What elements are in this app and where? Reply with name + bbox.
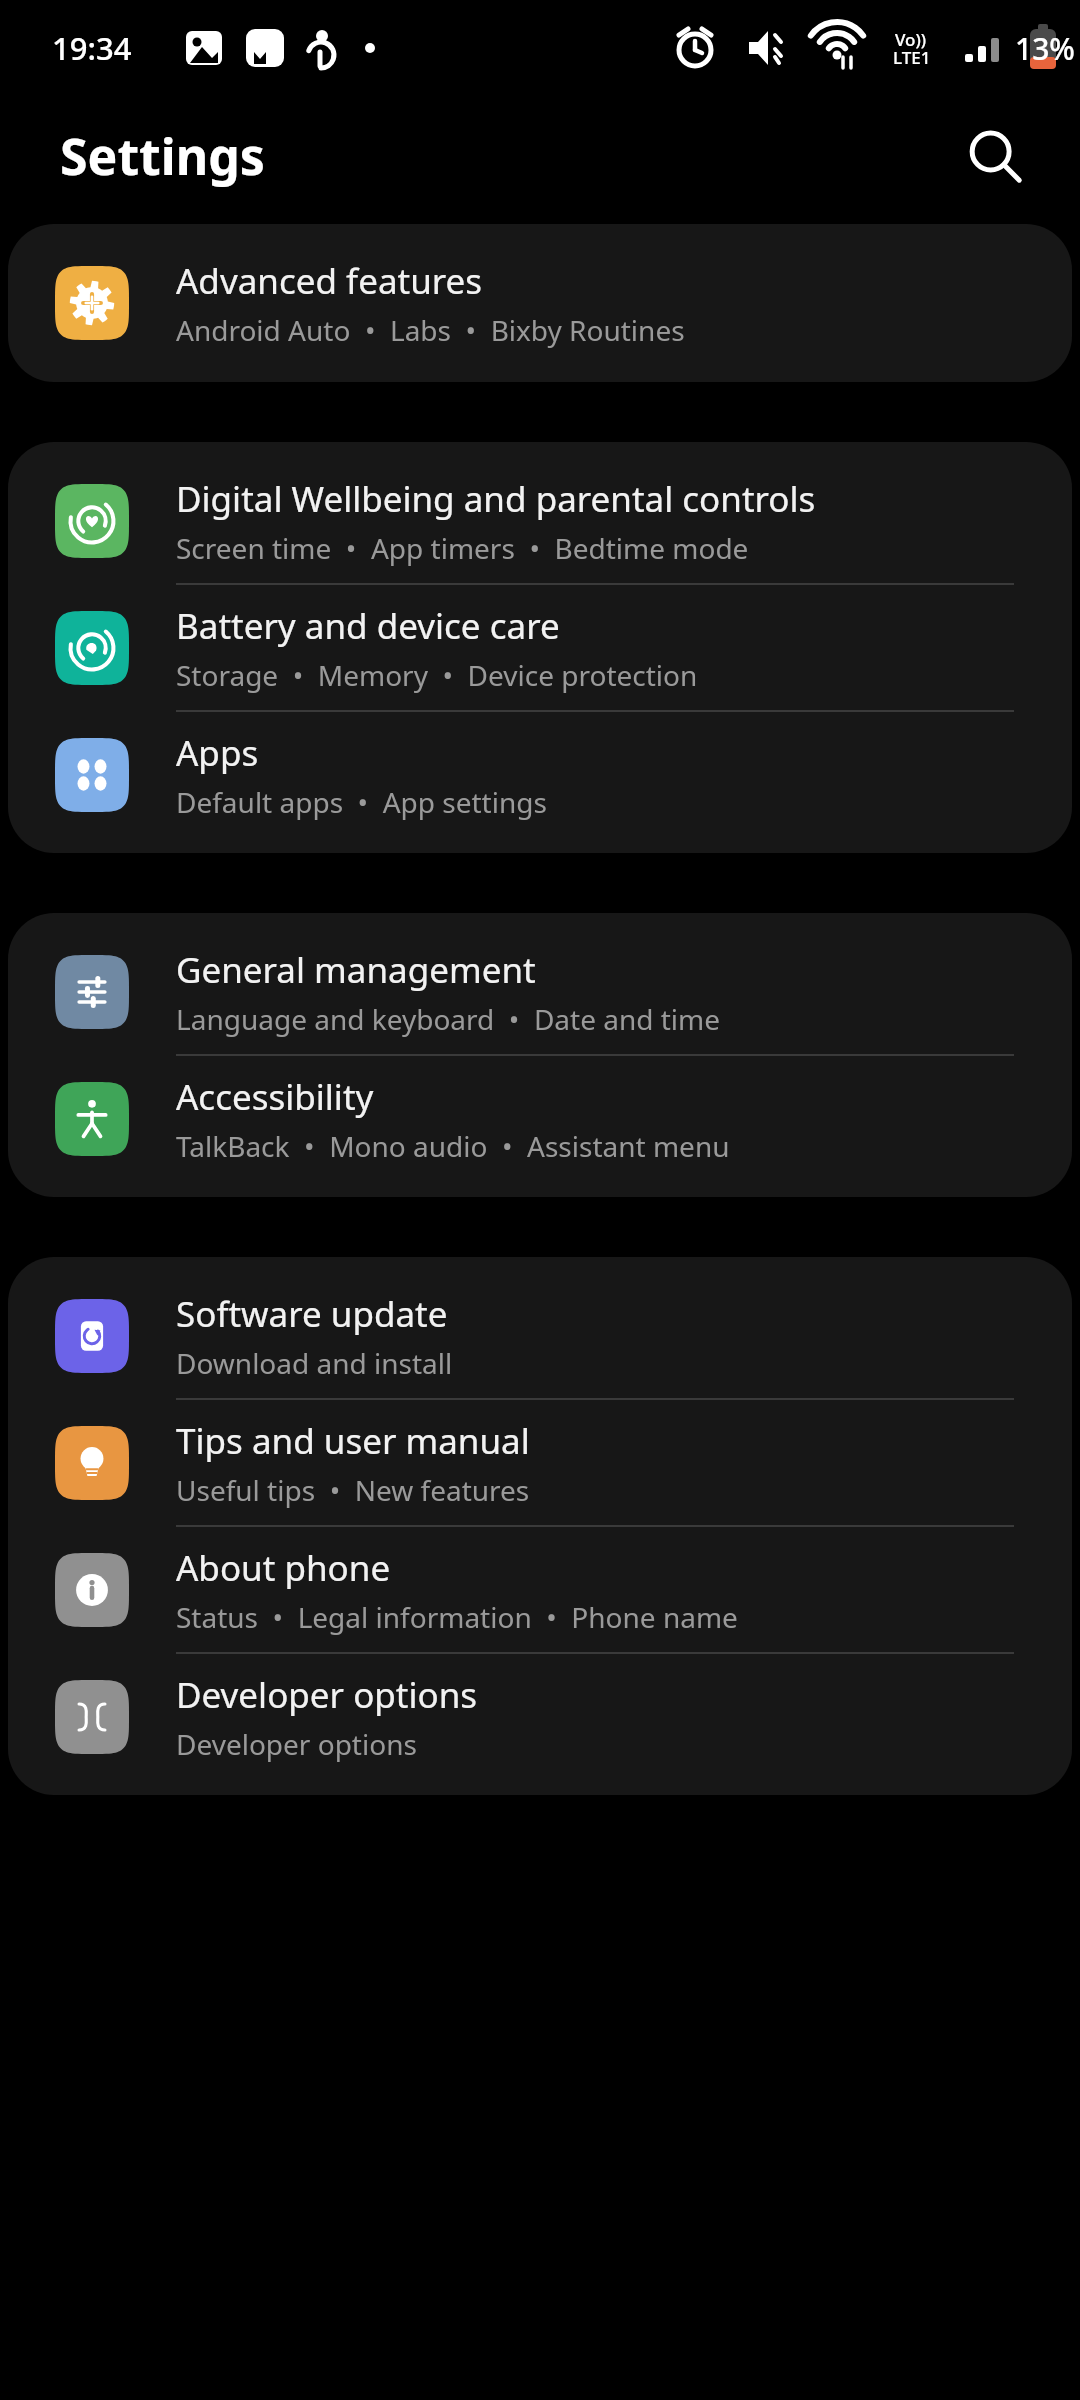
staticText: General management	[176, 946, 536, 994]
button[interactable]: Digital Wellbeing and parental controls	[8, 458, 1072, 583]
staticText: 13%	[1015, 28, 1075, 69]
staticText: Settings	[60, 122, 265, 190]
staticText: Tips and user manual	[176, 1417, 530, 1465]
staticText: Android Auto • Labs • Bixby Routines	[176, 311, 685, 349]
staticText: Software update	[176, 1290, 448, 1338]
staticText: LTE1	[893, 46, 931, 69]
button[interactable]: Software update	[8, 1273, 1072, 1398]
staticText: Advanced features	[176, 257, 483, 305]
button[interactable]: Developer options	[8, 1654, 1072, 1779]
staticText: Download and install	[176, 1344, 453, 1382]
button[interactable]: Accessibility	[8, 1056, 1072, 1181]
button[interactable]: General management	[8, 929, 1072, 1054]
button[interactable]: Battery and device care	[8, 585, 1072, 710]
button[interactable]: About phone	[8, 1527, 1072, 1652]
button[interactable]: Advanced features	[8, 240, 1072, 366]
staticText: Accessibility	[176, 1073, 374, 1121]
staticText: Digital Wellbeing and parental controls	[176, 475, 816, 523]
staticText: 19:34	[52, 27, 132, 69]
staticText: About phone	[176, 1544, 391, 1592]
staticText: Useful tips • New features	[176, 1471, 530, 1509]
staticText: Status • Legal information • Phone name	[176, 1598, 738, 1636]
staticText: Developer options	[176, 1671, 478, 1719]
button[interactable]: Apps	[8, 712, 1072, 837]
staticText: TalkBack • Mono audio • Assistant menu	[176, 1127, 730, 1165]
button[interactable]: Search	[952, 114, 1036, 198]
staticText: Developer options	[176, 1725, 417, 1763]
staticText: Default apps • App settings	[176, 783, 547, 821]
staticText: Battery and device care	[176, 602, 560, 650]
staticText: Storage • Memory • Device protection	[176, 656, 698, 694]
staticText: Apps	[176, 729, 259, 777]
staticText: Screen time • App timers • Bedtime mode	[176, 529, 749, 567]
staticText: Vo))	[895, 28, 927, 51]
button[interactable]: Tips and user manual	[8, 1400, 1072, 1525]
staticText: Language and keyboard • Date and time	[176, 1000, 721, 1038]
